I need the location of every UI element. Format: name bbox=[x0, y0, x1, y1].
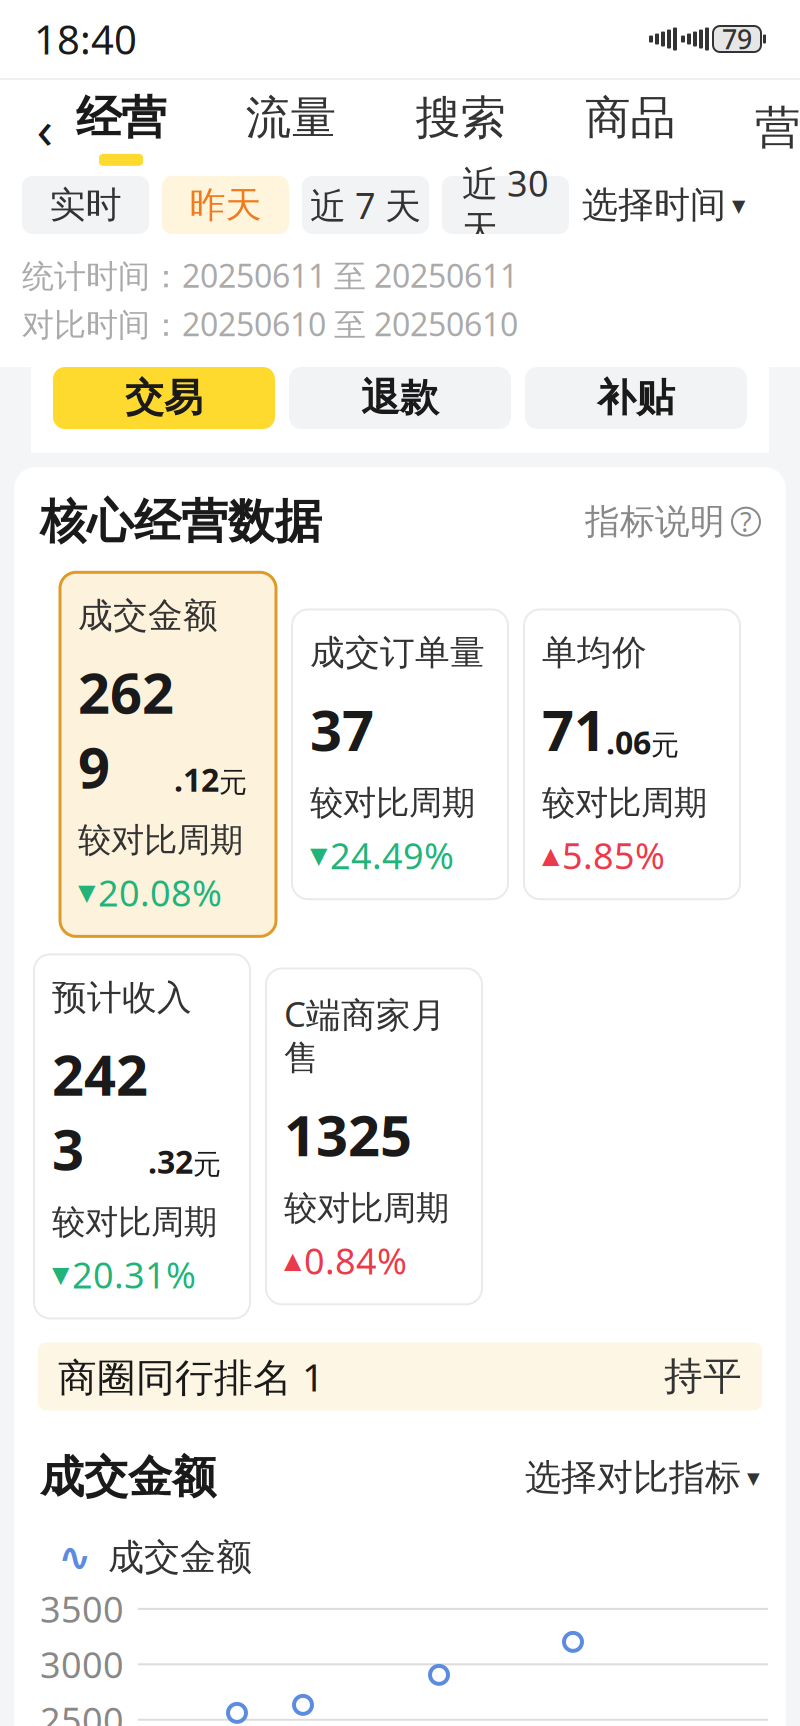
staticText: 3500 bbox=[40, 1585, 124, 1633]
staticText: 5.85% bbox=[562, 831, 665, 879]
button[interactable]: 近 30 天 bbox=[442, 176, 569, 234]
staticText: 选择时间 bbox=[582, 183, 726, 227]
staticText: .06 bbox=[606, 721, 651, 763]
button[interactable]: 近 7 天 bbox=[302, 176, 429, 234]
staticText: 统计时间：20250611 至 20250611 bbox=[22, 254, 518, 296]
staticText: 预计收入 bbox=[52, 976, 192, 1019]
staticText: ▼ bbox=[52, 1262, 69, 1287]
staticText: 元 bbox=[219, 765, 247, 800]
button[interactable]: 选择对比指标 bbox=[525, 1455, 760, 1499]
staticText: 较对比周期 bbox=[52, 1202, 217, 1243]
staticText: 20.31% bbox=[72, 1251, 196, 1298]
staticText: 2423 bbox=[52, 1037, 148, 1186]
button[interactable]: 经营 bbox=[76, 90, 166, 166]
staticText: ▲ bbox=[284, 1248, 301, 1273]
staticText: 较对比周期 bbox=[310, 782, 475, 823]
button[interactable]: 昨天 bbox=[162, 176, 289, 234]
staticText: 营 bbox=[755, 100, 800, 156]
staticText: 流量 bbox=[246, 90, 336, 146]
staticText: 成交金额 bbox=[108, 1535, 252, 1579]
staticText: 退款 bbox=[361, 374, 439, 422]
staticText: ‹ bbox=[36, 93, 53, 163]
button[interactable]: 指标说明 bbox=[585, 500, 760, 543]
staticText: .12 bbox=[174, 758, 219, 801]
staticText: 成交订单量 bbox=[310, 631, 485, 674]
staticText: 选择对比指标 bbox=[525, 1455, 741, 1499]
staticText: 商圈同行排名 1 bbox=[58, 1351, 324, 1402]
staticText: ▼ bbox=[78, 880, 95, 905]
button[interactable]: 商品 bbox=[585, 90, 675, 166]
staticText: 昨天 bbox=[189, 183, 261, 227]
staticText: 补贴 bbox=[597, 374, 675, 422]
staticText: C端商家月售 bbox=[284, 990, 446, 1079]
staticText: 搜索 bbox=[415, 90, 505, 146]
staticText: 近 30 天 bbox=[462, 159, 549, 251]
button[interactable]: C端商家月售 bbox=[266, 968, 482, 1304]
button[interactable]: Back bbox=[14, 93, 76, 163]
button[interactable]: 交易 bbox=[53, 367, 275, 429]
staticText: 37 bbox=[310, 692, 374, 766]
staticText: 较对比周期 bbox=[78, 820, 243, 860]
staticText: 71 bbox=[542, 692, 606, 766]
button[interactable]: 成交订单量 bbox=[292, 609, 508, 899]
staticText: ▼ bbox=[310, 842, 327, 868]
button[interactable]: 流量 bbox=[246, 90, 336, 166]
staticText: 较对比周期 bbox=[284, 1188, 449, 1228]
staticText: 成交金额 bbox=[78, 594, 218, 637]
button[interactable]: 退款 bbox=[289, 367, 511, 429]
staticText: 24.49% bbox=[330, 831, 454, 879]
staticText: 3000 bbox=[40, 1640, 124, 1688]
staticText: 1325 bbox=[284, 1097, 412, 1172]
staticText: 对比时间：20250610 至 20250610 bbox=[22, 302, 518, 345]
staticText: 元 bbox=[193, 1147, 221, 1182]
staticText: 近 7 天 bbox=[310, 181, 421, 229]
staticText: 指标说明 bbox=[585, 500, 725, 543]
staticText: 20.08% bbox=[98, 869, 222, 916]
button[interactable]: 搜索 bbox=[415, 90, 505, 166]
staticText: 商品 bbox=[585, 90, 675, 146]
button[interactable]: 补贴 bbox=[525, 367, 747, 429]
staticText: 实时 bbox=[49, 183, 121, 227]
staticText: 0.84% bbox=[304, 1237, 407, 1284]
staticText: 元 bbox=[651, 728, 679, 762]
staticText: 较对比周期 bbox=[542, 782, 707, 823]
staticText: 核心经营数据 bbox=[40, 493, 322, 550]
staticText: ▲ bbox=[542, 842, 559, 868]
staticText: 交易 bbox=[125, 374, 203, 422]
button[interactable]: 预计收入 bbox=[34, 954, 250, 1318]
staticText: 2500 bbox=[40, 1696, 124, 1726]
button[interactable]: 实时 bbox=[22, 176, 149, 234]
staticText: 经营 bbox=[76, 90, 166, 146]
staticText: ▾ bbox=[732, 190, 745, 220]
staticText: 18:40 bbox=[34, 12, 137, 65]
staticText: .32 bbox=[148, 1140, 193, 1183]
staticText: ▾ bbox=[747, 1463, 760, 1492]
staticText: 成交金额 bbox=[40, 1450, 216, 1504]
staticText: 79 bbox=[722, 21, 752, 57]
button[interactable]: 选择时间 bbox=[582, 176, 745, 234]
staticText: ∿ bbox=[58, 1534, 92, 1580]
staticText: 2629 bbox=[78, 655, 174, 804]
button[interactable]: 成交金额 bbox=[60, 572, 276, 936]
staticText: 持平 bbox=[664, 1353, 742, 1400]
staticText: 单均价 bbox=[542, 631, 647, 674]
staticText: ? bbox=[740, 504, 752, 539]
button[interactable]: 单均价 bbox=[524, 609, 740, 899]
